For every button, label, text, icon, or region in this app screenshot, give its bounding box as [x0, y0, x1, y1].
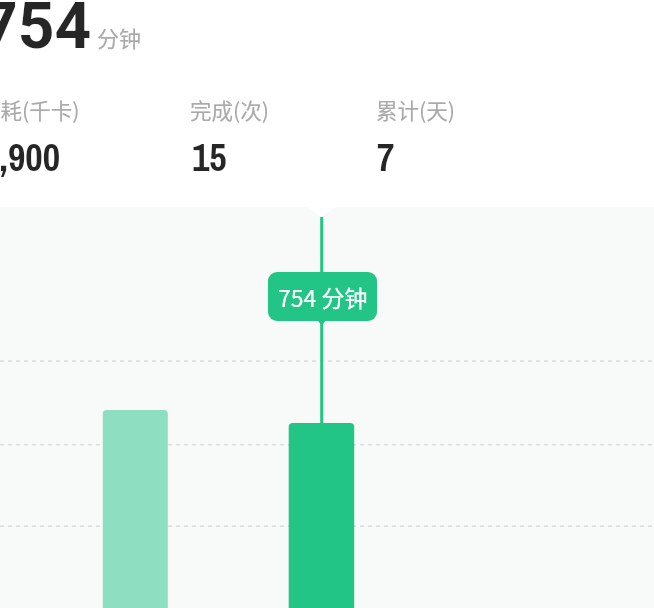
staticText: 分钟: [97, 21, 142, 53]
staticText: 754 分钟: [278, 280, 368, 313]
staticText: 15: [192, 132, 227, 183]
staticText: 完成(次): [190, 94, 270, 125]
staticText: 消耗(千卡): [0, 94, 80, 125]
staticText: 1,900: [0, 132, 60, 183]
staticText: 754: [0, 0, 92, 64]
button[interactable]: 754 分钟: [268, 272, 377, 321]
staticText: 7: [377, 132, 395, 183]
staticText: 累计(天): [376, 94, 456, 125]
